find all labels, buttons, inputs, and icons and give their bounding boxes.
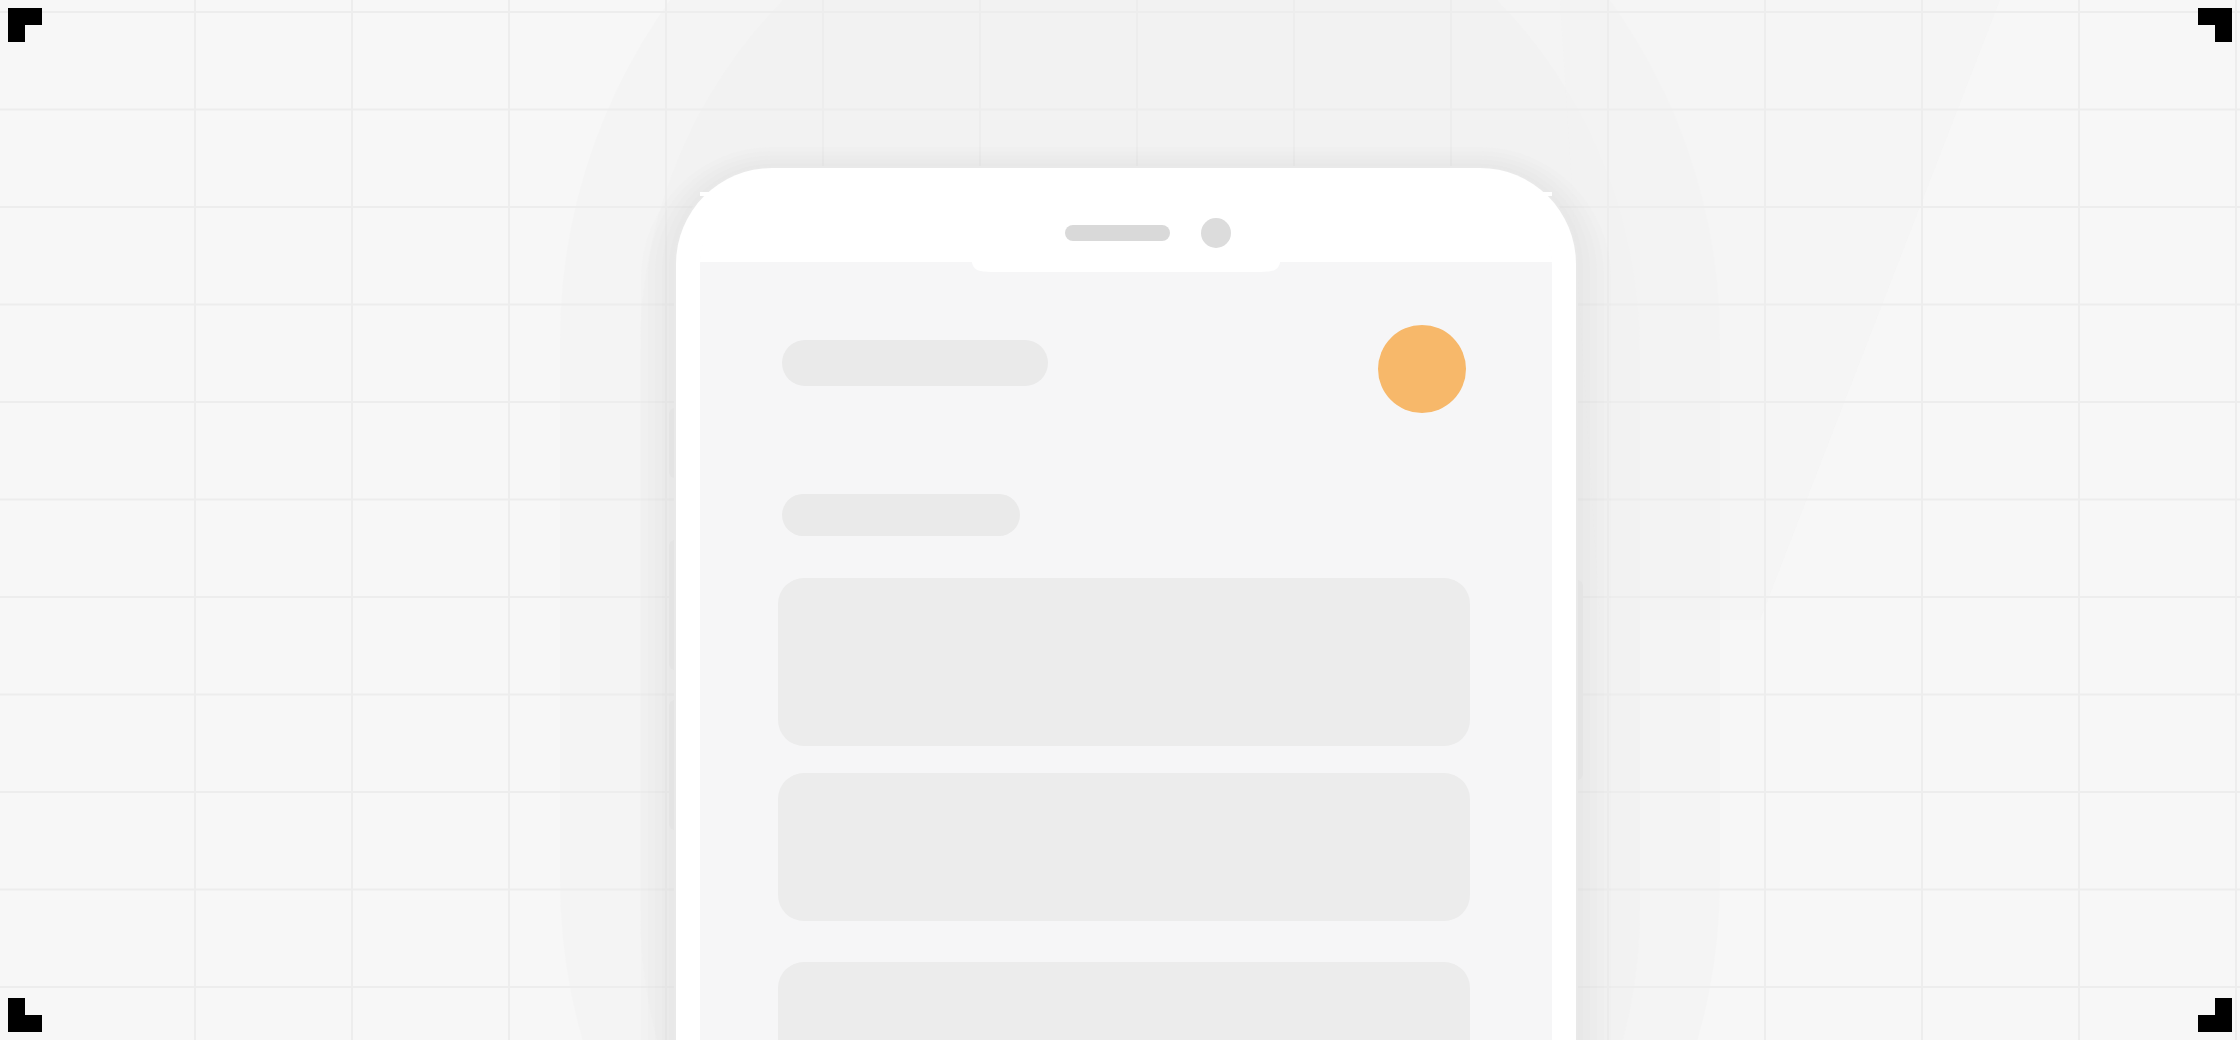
button[interactable]: Add new item <box>1378 325 1466 413</box>
button[interactable]: Screen title <box>782 336 1048 390</box>
button[interactable]: Section heading <box>782 490 1020 540</box>
